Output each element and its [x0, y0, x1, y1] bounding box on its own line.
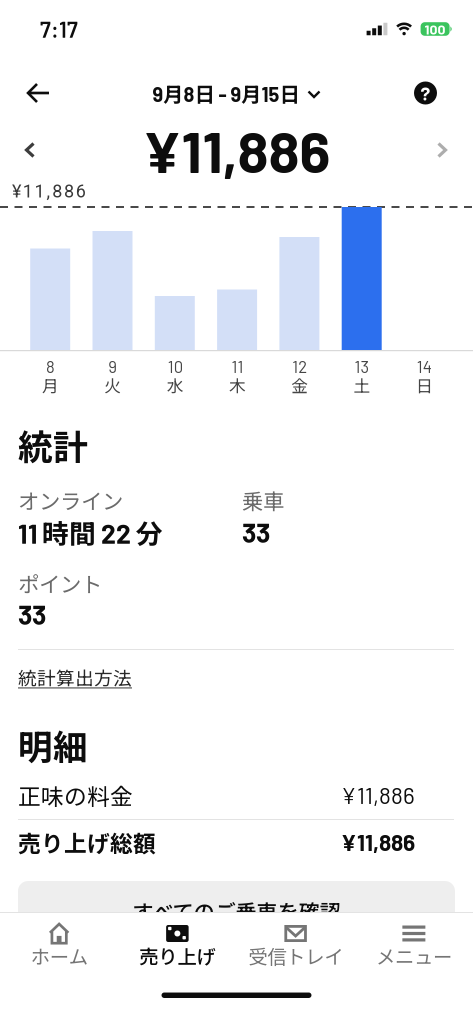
button[interactable]: Back — [0, 83, 50, 103]
staticText: 9月8日 - 9月15日 — [152, 78, 299, 107]
staticText: 月 — [42, 373, 59, 397]
staticText: ¥11,886 — [12, 181, 86, 202]
button[interactable]: 受信トレイ — [236, 913, 355, 966]
button[interactable]: 売り上げ — [118, 913, 236, 966]
staticText: 木 — [229, 373, 246, 397]
staticText: 14 — [417, 356, 432, 376]
staticText: 金 — [291, 373, 308, 397]
staticText: ホーム — [31, 941, 88, 969]
staticText: 7:17 — [40, 16, 78, 42]
staticText: 12 — [292, 356, 307, 376]
staticText: メニュー — [376, 941, 452, 969]
staticText: ? — [420, 82, 430, 104]
button[interactable]: ホーム — [0, 913, 118, 966]
button[interactable]: 統計算出方法 — [0, 650, 132, 704]
staticText: 100 — [425, 21, 446, 37]
staticText: 8 — [46, 356, 55, 376]
staticText: ¥11,886 — [142, 116, 330, 184]
staticText: 日 — [416, 373, 433, 397]
staticText: 13 — [354, 356, 369, 376]
staticText: 売り上げ — [139, 941, 215, 969]
staticText: 10 — [168, 356, 183, 376]
button[interactable]: Next week — [437, 142, 473, 157]
staticText: すべてのご乗車を確認 — [132, 896, 340, 926]
staticText: 乗車 — [242, 485, 284, 515]
button[interactable]: すべてのご乗車を確認 — [0, 881, 473, 933]
staticText: 火 — [104, 373, 121, 397]
staticText: ¥11,886 — [341, 828, 415, 856]
button[interactable]: 9月8日 - 9月15日 — [152, 78, 320, 107]
staticText: 33 — [18, 598, 46, 630]
button[interactable]: Previous week — [0, 142, 35, 157]
button[interactable]: メニュー — [355, 913, 473, 966]
staticText: オンライン — [18, 485, 123, 515]
staticText: ¥11,886 — [341, 781, 415, 809]
staticText: ポイント — [18, 568, 102, 598]
staticText: 統計算出方法 — [18, 663, 132, 690]
staticText: 11 時間 22 分 — [18, 513, 163, 551]
staticText: 受信トレイ — [248, 941, 343, 969]
staticText: 水 — [167, 373, 184, 397]
staticText: 統計 — [18, 420, 88, 470]
staticText: 明細 — [18, 720, 88, 770]
button[interactable]: Help — [414, 81, 473, 104]
staticText: 正味の料金 — [18, 779, 133, 811]
staticText: 33 — [242, 516, 270, 548]
staticText: 11 — [231, 356, 243, 376]
staticText: 9 — [108, 356, 117, 376]
staticText: 土 — [353, 373, 370, 397]
staticText: 売り上げ総額 — [18, 826, 156, 858]
